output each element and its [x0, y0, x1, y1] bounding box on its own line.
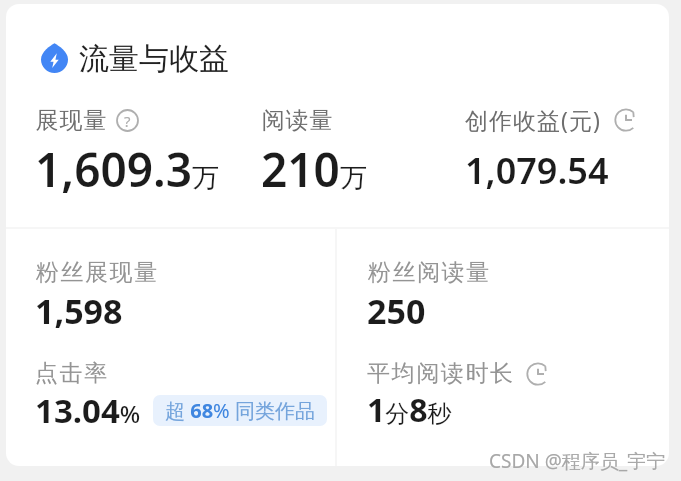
button[interactable]: 粉丝展现量	[35, 258, 158, 334]
staticText: CSDN @程序员_宇宁	[489, 448, 666, 474]
button[interactable]: History	[614, 108, 638, 132]
staticText: 点击率	[35, 359, 109, 388]
button[interactable]: 阅读量	[261, 106, 465, 201]
staticText: 1,609.3万	[35, 138, 220, 201]
staticText: 超 68% 同类作品	[165, 397, 315, 424]
button[interactable]: 超 68% 同类作品	[153, 395, 327, 426]
button[interactable]: 平均阅读时长	[367, 359, 550, 432]
staticText: 250	[367, 288, 426, 334]
staticText: 粉丝展现量	[35, 258, 158, 287]
staticText: 展现量	[35, 106, 107, 135]
staticText: 1分8秒	[367, 388, 452, 432]
button[interactable]: Help	[116, 109, 139, 132]
button[interactable]: 展现量	[35, 106, 261, 201]
staticText: 粉丝阅读量	[367, 258, 490, 287]
staticText: 210万	[261, 138, 367, 201]
button[interactable]: 粉丝阅读量	[367, 258, 490, 334]
staticText: 流量与收益	[79, 40, 229, 78]
button[interactable]: 创作收益(元)	[465, 106, 638, 195]
button[interactable]: History	[526, 362, 550, 386]
staticText: 阅读量	[261, 106, 333, 135]
staticText: 平均阅读时长	[367, 359, 515, 388]
button[interactable]: 点击率	[35, 359, 327, 433]
staticText: 1,598	[35, 288, 123, 334]
button[interactable]: 流量与收益	[6, 4, 669, 80]
staticText: 1,079.54	[465, 146, 609, 195]
staticText: 13.04%	[35, 388, 141, 433]
staticText: ?	[124, 111, 131, 131]
staticText: 创作收益(元)	[465, 104, 601, 135]
